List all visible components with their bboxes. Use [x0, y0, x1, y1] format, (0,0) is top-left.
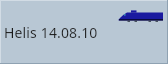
other: Train [0, 0, 168, 64]
staticText: Helis 14.08.10 [4, 23, 98, 42]
button[interactable]: Helis 14.08.10 [0, 0, 168, 64]
